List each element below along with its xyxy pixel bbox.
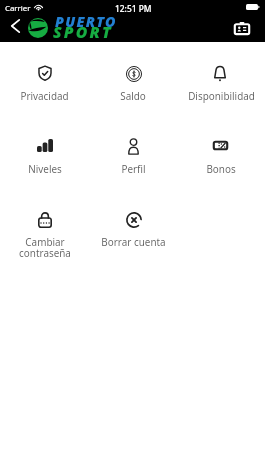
staticText: Borrar cuenta xyxy=(101,235,166,248)
staticText: Bonos xyxy=(206,162,236,175)
button[interactable]: Niveles xyxy=(0,115,89,188)
button[interactable]: Credencial xyxy=(231,17,253,39)
staticText: Carrier xyxy=(5,3,31,14)
button[interactable]: Saldo xyxy=(89,42,177,115)
staticText: PUERTO xyxy=(55,12,117,31)
staticText: Privacidad xyxy=(20,89,69,102)
button[interactable]: Borrar cuenta xyxy=(89,188,177,261)
staticText: Niveles xyxy=(28,162,62,175)
button[interactable]: Perfil xyxy=(89,115,177,188)
staticText: Perfil xyxy=(121,162,146,175)
button[interactable]: Disponibilidad xyxy=(177,42,265,115)
staticText: Disponibilidad xyxy=(188,89,255,102)
staticText: SPORT xyxy=(53,21,113,42)
button[interactable]: Bonos xyxy=(177,115,265,188)
staticText: Saldo xyxy=(120,89,146,102)
staticText: Cambiar contraseña xyxy=(19,235,71,260)
button[interactable]: Privacidad xyxy=(0,42,89,115)
button[interactable]: Atrás xyxy=(5,14,26,38)
staticText: 12:51 PM xyxy=(115,3,152,14)
button[interactable]: Cambiar contraseña xyxy=(0,188,89,261)
